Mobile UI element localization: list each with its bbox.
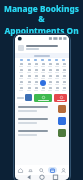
button[interactable]: Customer avatar [25, 94, 32, 101]
button[interactable] [25, 74, 32, 80]
button[interactable] [32, 86, 39, 92]
button[interactable] [53, 74, 60, 80]
button[interactable] [54, 94, 67, 102]
button[interactable] [32, 74, 39, 80]
button[interactable] [46, 68, 53, 74]
button[interactable] [15, 42, 69, 53]
button[interactable] [46, 80, 53, 86]
staticText: Manage Bookings & [2, 3, 81, 25]
button[interactable] [60, 62, 67, 68]
button[interactable] [32, 68, 39, 74]
button[interactable] [53, 80, 60, 86]
button[interactable] [25, 80, 32, 86]
button[interactable] [46, 86, 53, 92]
button[interactable] [34, 94, 52, 102]
button[interactable] [39, 86, 46, 92]
button[interactable]: Home [15, 165, 25, 175]
staticText: Appointments On [4, 25, 79, 36]
button[interactable] [32, 62, 39, 68]
button[interactable] [17, 62, 25, 68]
button[interactable]: Notifications [25, 165, 36, 175]
button[interactable] [15, 103, 69, 115]
staticText: the Go [28, 36, 56, 47]
button[interactable] [53, 62, 60, 68]
button[interactable] [46, 74, 53, 80]
button[interactable] [17, 68, 25, 74]
button[interactable] [39, 74, 46, 80]
button[interactable] [15, 115, 69, 127]
button[interactable] [46, 62, 53, 68]
button[interactable] [25, 86, 32, 92]
button[interactable] [25, 68, 32, 74]
button[interactable] [32, 80, 39, 86]
button[interactable] [17, 74, 25, 80]
button[interactable] [17, 80, 25, 86]
button[interactable] [60, 68, 67, 74]
button[interactable] [39, 80, 46, 86]
button[interactable] [60, 86, 67, 92]
button[interactable]: Search [36, 165, 47, 175]
button[interactable] [60, 74, 67, 80]
button[interactable] [15, 127, 69, 139]
button[interactable] [25, 62, 32, 68]
button[interactable] [17, 86, 25, 92]
button[interactable] [53, 68, 60, 74]
button[interactable] [53, 86, 60, 92]
button[interactable] [39, 62, 46, 68]
button[interactable] [60, 80, 67, 86]
button[interactable] [39, 68, 46, 74]
button[interactable]: Profile [58, 165, 69, 175]
button[interactable]: Calendar [47, 165, 58, 175]
